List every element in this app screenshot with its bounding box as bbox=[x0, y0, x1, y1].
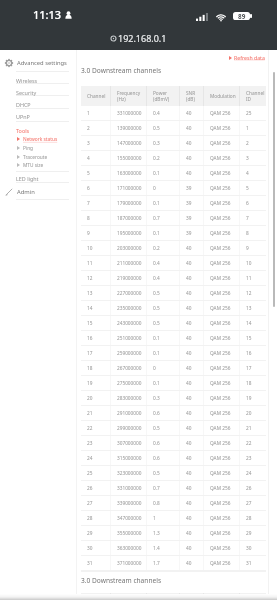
staticText: 3.0 Downstream channels bbox=[81, 576, 162, 585]
staticText: QAM 256 bbox=[210, 560, 231, 566]
staticText: 5 bbox=[87, 170, 90, 176]
staticText: QAM 256 bbox=[210, 470, 231, 476]
staticText: 18 bbox=[87, 365, 93, 371]
staticText: 40 bbox=[186, 410, 192, 416]
staticText: 0.7 bbox=[153, 215, 160, 221]
staticText: 23 bbox=[87, 440, 93, 446]
button[interactable]: Ping bbox=[0, 144, 77, 152]
staticText: QAM 256 bbox=[210, 380, 231, 386]
staticText: 0 bbox=[153, 365, 156, 371]
staticText: QAM 256 bbox=[210, 425, 231, 431]
staticText: 12 bbox=[87, 275, 93, 281]
button[interactable]: Security bbox=[0, 87, 77, 97]
staticText: QAM 256 bbox=[210, 545, 231, 551]
button[interactable]: UPnP bbox=[0, 111, 77, 121]
staticText: QAM 256 bbox=[210, 455, 231, 461]
staticText: 29 bbox=[87, 530, 93, 536]
staticText: Tools bbox=[16, 127, 30, 134]
staticText: 11 bbox=[246, 275, 252, 281]
staticText: 40 bbox=[186, 425, 192, 431]
staticText: 20 bbox=[87, 395, 93, 401]
staticText: QAM 256 bbox=[210, 320, 231, 326]
staticText: 40 bbox=[186, 485, 192, 491]
staticText: 40 bbox=[186, 530, 192, 536]
button[interactable]: MTU size bbox=[0, 161, 77, 169]
staticText: 227000000 bbox=[117, 290, 142, 296]
staticText: 0.1 bbox=[153, 380, 160, 386]
staticText: 331000000 bbox=[117, 110, 142, 116]
button[interactable]: Tools bbox=[0, 125, 77, 135]
staticText: 8 bbox=[246, 230, 249, 236]
button[interactable]: Refresh data bbox=[229, 54, 265, 61]
staticText: 19 bbox=[87, 380, 93, 386]
staticText: 24 bbox=[87, 455, 93, 461]
staticText: 243000000 bbox=[117, 320, 142, 326]
staticText: 3 bbox=[246, 155, 249, 161]
staticText: 14 bbox=[87, 305, 93, 311]
staticText: 10 bbox=[87, 245, 93, 251]
staticText: 40 bbox=[186, 320, 192, 326]
staticText: UPnP bbox=[16, 113, 30, 120]
staticText: 39 bbox=[186, 230, 192, 236]
staticText: 339000000 bbox=[117, 500, 142, 506]
staticText: 5 bbox=[246, 185, 249, 191]
staticText: 40 bbox=[186, 560, 192, 566]
staticText: 40 bbox=[186, 245, 192, 251]
staticText: 331000000 bbox=[117, 485, 142, 491]
staticText: 275000000 bbox=[117, 380, 142, 386]
staticText: 40 bbox=[186, 170, 192, 176]
staticText: 39 bbox=[186, 215, 192, 221]
staticText: 1 bbox=[87, 110, 90, 116]
staticText: 22 bbox=[246, 440, 252, 446]
button[interactable]: DHCP bbox=[0, 99, 77, 109]
staticText: 0.4 bbox=[153, 110, 160, 116]
staticText: 40 bbox=[186, 155, 192, 161]
staticText: 0.6 bbox=[153, 410, 160, 416]
staticText: 40 bbox=[186, 110, 192, 116]
staticText: QAM 256 bbox=[210, 440, 231, 446]
staticText: 40 bbox=[186, 395, 192, 401]
staticText: 30 bbox=[87, 545, 93, 551]
staticText: 347000000 bbox=[117, 515, 142, 521]
staticText: QAM 256 bbox=[210, 230, 231, 236]
staticText: 18 bbox=[246, 380, 252, 386]
staticText: 192.168.0.1 bbox=[118, 32, 167, 44]
staticText: 14 bbox=[246, 320, 252, 326]
staticText: 26 bbox=[246, 485, 252, 491]
button[interactable]: Network status bbox=[0, 135, 77, 143]
staticText: 0.7 bbox=[153, 485, 160, 491]
button[interactable]: Admin bbox=[0, 185, 77, 198]
button[interactable]: LED light bbox=[0, 173, 77, 183]
staticText: 139000000 bbox=[117, 125, 142, 131]
staticText: QAM 256 bbox=[210, 125, 231, 131]
button[interactable]: Wireless bbox=[0, 75, 77, 85]
staticText: Channel bbox=[87, 93, 106, 99]
staticText: 3 bbox=[87, 140, 90, 146]
staticText: 23 bbox=[246, 455, 252, 461]
staticText: 259000000 bbox=[117, 350, 142, 356]
staticText: 40 bbox=[186, 455, 192, 461]
staticText: QAM 256 bbox=[210, 155, 231, 161]
staticText: 0.8 bbox=[153, 500, 160, 506]
staticText: 0.3 bbox=[153, 395, 160, 401]
button[interactable]: Traceroute bbox=[0, 153, 77, 161]
staticText: 19 bbox=[246, 395, 252, 401]
staticText: 10 bbox=[246, 260, 252, 266]
staticText: 25 bbox=[246, 110, 252, 116]
staticText: 1.7 bbox=[153, 560, 160, 566]
button[interactable]: Advanced settings bbox=[0, 56, 77, 69]
staticText: 20 bbox=[246, 410, 252, 416]
staticText: 0.5 bbox=[153, 305, 160, 311]
staticText: 15 bbox=[87, 320, 93, 326]
staticText: 40 bbox=[186, 275, 192, 281]
staticText: 40 bbox=[186, 545, 192, 551]
staticText: 4 bbox=[246, 170, 249, 176]
staticText: 0.1 bbox=[153, 200, 160, 206]
staticText: 267000000 bbox=[117, 365, 142, 371]
staticText: 3.0 Downstream channels bbox=[81, 66, 162, 75]
staticText: 0.5 bbox=[153, 470, 160, 476]
staticText: QAM 256 bbox=[210, 515, 231, 521]
staticText: 40 bbox=[186, 305, 192, 311]
staticText: 9 bbox=[246, 245, 249, 251]
staticText: 6 bbox=[246, 200, 249, 206]
